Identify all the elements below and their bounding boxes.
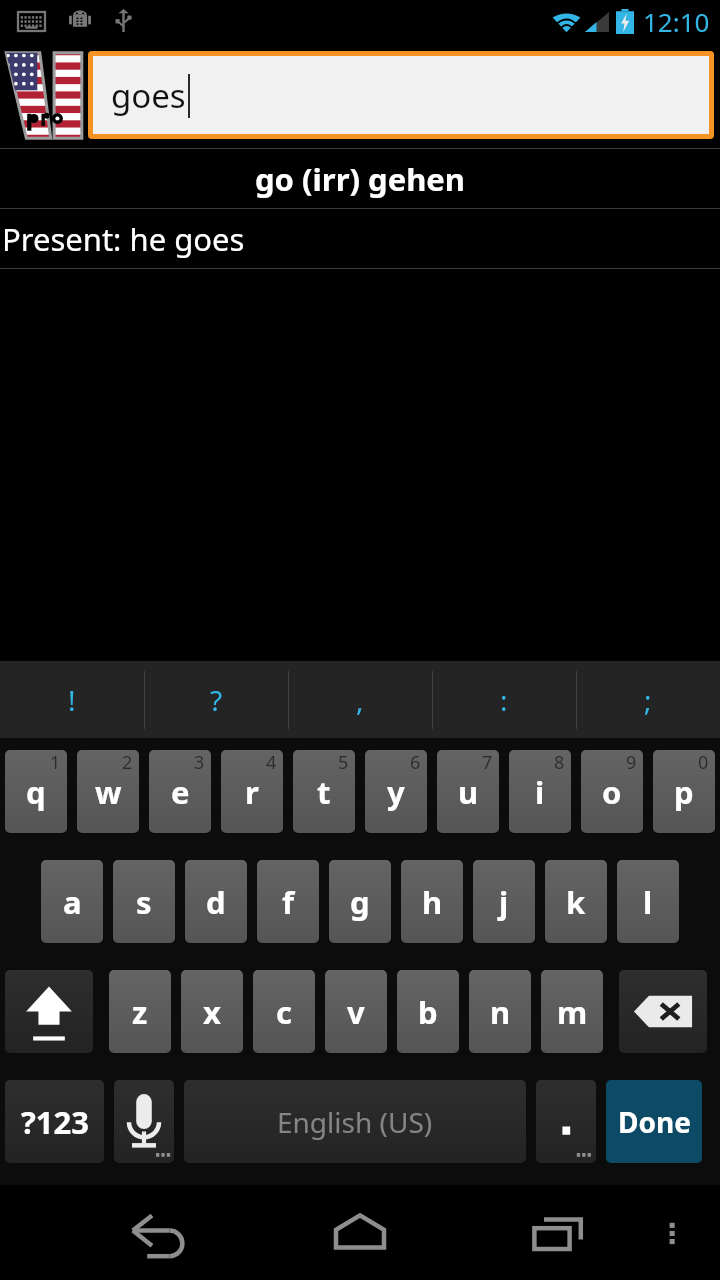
button[interactable]: a <box>41 860 103 943</box>
button[interactable]: Voice input <box>114 1080 174 1163</box>
staticText: a <box>63 881 82 923</box>
button[interactable]: More options <box>642 1203 702 1263</box>
button[interactable]: l <box>617 860 679 943</box>
button[interactable]: m <box>541 970 603 1053</box>
button[interactable]: t <box>293 750 355 833</box>
button[interactable]: Present: he goes <box>0 209 720 268</box>
button[interactable]: v <box>325 970 387 1053</box>
button[interactable]: b <box>397 970 459 1053</box>
staticText: 5 <box>338 750 349 775</box>
button[interactable]: u <box>437 750 499 833</box>
button[interactable]: Space <box>184 1080 526 1163</box>
button[interactable]: ; <box>576 661 720 738</box>
staticText: Done <box>618 1103 691 1141</box>
staticText: 3 <box>194 750 205 775</box>
button[interactable]: y <box>365 750 427 833</box>
button[interactable]: : <box>432 661 576 738</box>
button[interactable]: k <box>545 860 607 943</box>
button[interactable]: Recent apps <box>520 1193 600 1273</box>
staticText: 8 <box>554 750 565 775</box>
staticText: y <box>387 771 405 813</box>
staticText: 2 <box>122 750 133 775</box>
staticText: ? <box>210 681 223 719</box>
staticText: j <box>499 881 509 923</box>
staticText: 0 <box>698 750 709 775</box>
button[interactable]: j <box>473 860 535 943</box>
staticText: go (irr) gehen <box>255 158 465 200</box>
staticText: English (US) <box>277 1103 433 1141</box>
button[interactable]: x <box>181 970 243 1053</box>
staticText: p <box>674 771 694 813</box>
button[interactable]: f <box>257 860 319 943</box>
staticText: 4 <box>266 750 277 775</box>
button[interactable]: q <box>5 750 67 833</box>
button[interactable]: s <box>113 860 175 943</box>
button[interactable]: Done <box>606 1080 702 1163</box>
staticText: o <box>602 771 622 813</box>
staticText: d <box>206 881 226 923</box>
staticText: Present: he goes <box>2 218 245 260</box>
staticText: m <box>557 991 588 1033</box>
button[interactable]: r <box>221 750 283 833</box>
staticText: r <box>245 771 259 813</box>
button[interactable]: o <box>581 750 643 833</box>
button[interactable]: Backspace <box>619 970 707 1053</box>
button[interactable]: ?123 <box>5 1080 104 1163</box>
button[interactable]: ? <box>144 661 288 738</box>
button[interactable]: p <box>653 750 715 833</box>
staticText: ; <box>644 681 652 719</box>
staticText: goes <box>111 73 186 118</box>
button[interactable]: c <box>253 970 315 1053</box>
staticText: n <box>490 991 511 1033</box>
staticText: k <box>566 881 586 923</box>
staticText: i <box>535 771 545 813</box>
staticText: f <box>282 881 294 923</box>
button[interactable]: Vocabulary app logo <box>2 48 86 142</box>
button[interactable]: ! <box>0 661 144 738</box>
staticText: 6 <box>410 750 421 775</box>
staticText: c <box>276 991 292 1033</box>
button[interactable]: goes <box>93 56 709 134</box>
staticText: 1 <box>50 750 61 775</box>
staticText: e <box>171 771 190 813</box>
button[interactable]: Home <box>320 1193 400 1273</box>
staticText: q <box>26 771 46 813</box>
button[interactable]: z <box>109 970 171 1053</box>
staticText: w <box>95 771 122 813</box>
staticText: t <box>317 771 331 813</box>
button[interactable]: w <box>77 750 139 833</box>
staticText: 9 <box>626 750 637 775</box>
button[interactable]: n <box>469 970 531 1053</box>
button[interactable]: go (irr) gehen <box>0 149 720 208</box>
button[interactable]: d <box>185 860 247 943</box>
staticText: g <box>350 881 370 923</box>
staticText: 7 <box>482 750 493 775</box>
button[interactable]: , <box>288 661 432 738</box>
staticText: v <box>347 991 365 1033</box>
staticText: : <box>500 681 508 719</box>
button[interactable]: Period <box>536 1080 596 1163</box>
button[interactable]: e <box>149 750 211 833</box>
staticText: x <box>203 991 221 1033</box>
staticText: h <box>422 881 443 923</box>
staticText: s <box>136 881 152 923</box>
staticText: b <box>418 991 438 1033</box>
staticText: , <box>356 681 364 719</box>
staticText: u <box>458 771 479 813</box>
button[interactable]: i <box>509 750 571 833</box>
staticText: ?123 <box>21 1101 89 1143</box>
staticText: ! <box>68 681 76 719</box>
staticText: 12:10 <box>643 4 710 39</box>
button[interactable]: Back <box>120 1193 200 1273</box>
staticText: l <box>643 881 653 923</box>
button[interactable]: h <box>401 860 463 943</box>
button[interactable]: g <box>329 860 391 943</box>
staticText: z <box>132 991 148 1033</box>
button[interactable]: Shift <box>5 970 93 1053</box>
